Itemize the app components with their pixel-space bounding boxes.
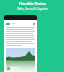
staticText: Flexible Notes <box>19 1 46 6</box>
staticText: Write, Record & Organise <box>17 7 48 11</box>
button[interactable] <box>4 15 37 20</box>
